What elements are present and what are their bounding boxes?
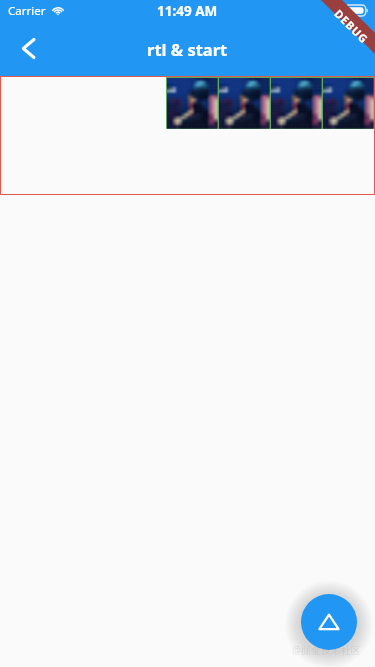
staticText: Carrier [8,3,46,19]
button[interactable]: Back [9,29,47,67]
staticText: rtl & start [147,38,228,60]
staticText: DEBUG [331,6,372,46]
button[interactable]: Play [301,594,357,650]
staticText: @掘金技术社区 [292,643,361,657]
staticText: 11:49 AM [157,2,218,20]
